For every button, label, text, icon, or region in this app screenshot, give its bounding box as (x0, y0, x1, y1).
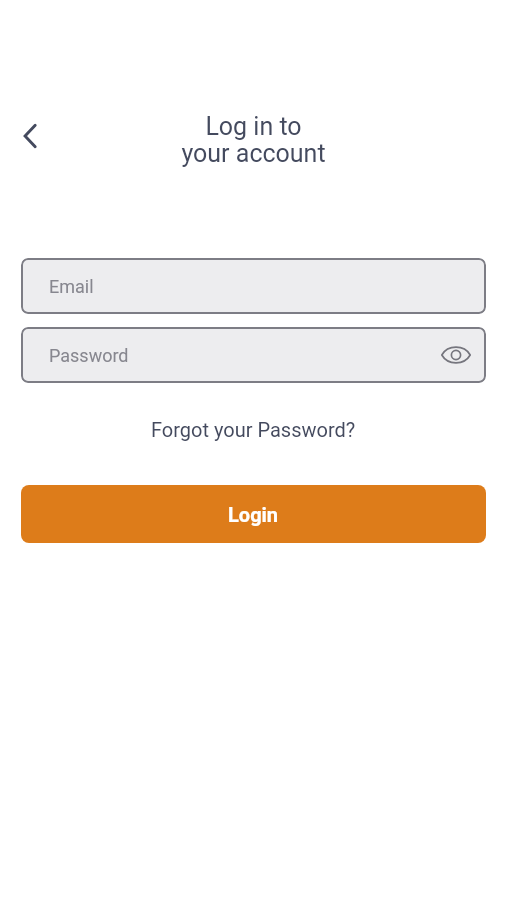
button[interactable]: Forgot your Password? (141, 415, 366, 444)
button[interactable]: Email (21, 258, 486, 314)
staticText: Email (49, 276, 94, 297)
staticText: Log in to your account (181, 112, 326, 168)
staticText: Login (228, 503, 279, 526)
button[interactable]: Login (21, 485, 486, 543)
staticText: Password (49, 345, 129, 366)
button[interactable]: Show password (439, 338, 473, 372)
button[interactable]: Back (6, 112, 54, 160)
staticText: Forgot your Password? (151, 418, 356, 441)
button[interactable]: Password (21, 327, 486, 383)
